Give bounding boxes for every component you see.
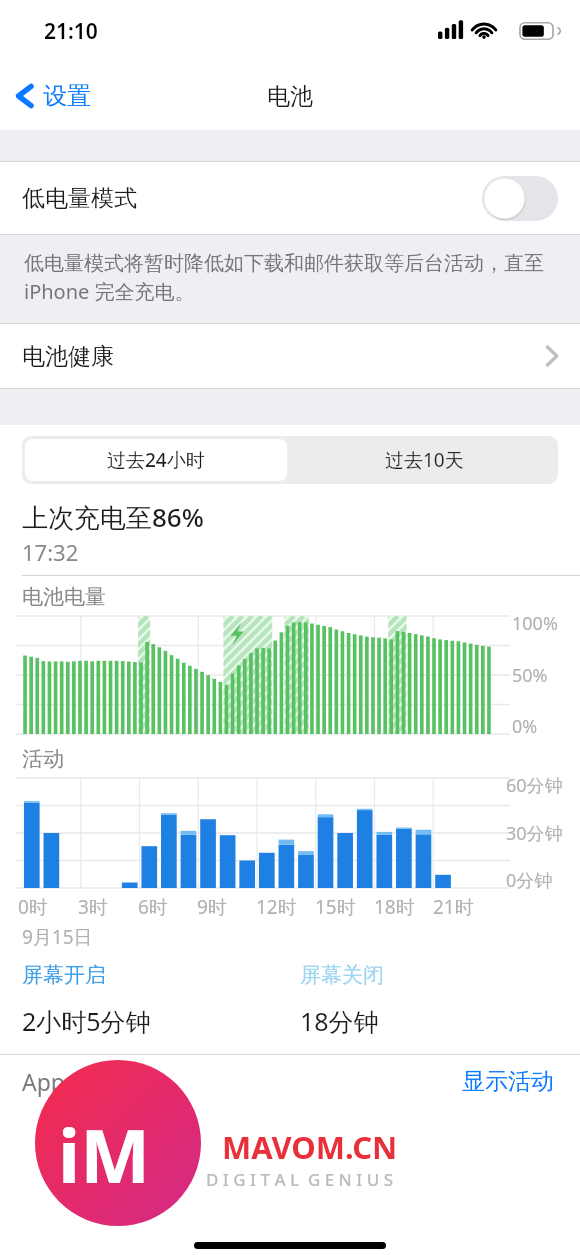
staticText: App 电池用量 (22, 1066, 163, 1097)
staticText: 100% (512, 611, 558, 636)
staticText: 电池 (267, 82, 313, 111)
staticText: 显示活动 (462, 1067, 554, 1096)
staticText: 9时 (197, 894, 227, 920)
staticText: 屏幕关闭 (300, 962, 384, 988)
button[interactable]: 低电量模式 (0, 161, 580, 235)
staticText: 设置 (43, 81, 91, 111)
staticText: 低电量模式将暂时降低如下载和邮件获取等后台活动，直至 iPhone 完全充电。 (24, 249, 558, 305)
staticText: MAVOM.CN (222, 1126, 398, 1168)
staticText: 3时 (78, 894, 108, 920)
staticText: 活动 (22, 746, 64, 772)
staticText: iM (58, 1104, 150, 1205)
button[interactable]: 电池健康 (0, 323, 580, 389)
staticText: 30分钟 (506, 821, 563, 846)
staticText: 15时 (315, 894, 356, 920)
staticText: 电池健康 (22, 342, 114, 371)
staticText: 9月15日 (22, 924, 93, 950)
button[interactable]: 显示活动 (458, 1063, 558, 1100)
staticText: 18分钟 (300, 1004, 379, 1038)
staticText: 0分钟 (506, 868, 553, 893)
staticText: 60分钟 (506, 773, 563, 798)
staticText: 屏幕开启 (22, 962, 106, 988)
staticText: 18时 (374, 894, 415, 920)
staticText: 21:10 (44, 17, 98, 46)
button[interactable]: 过去24小时 (25, 439, 287, 481)
button[interactable]: 过去10天 (290, 436, 558, 484)
staticText: 17:32 (22, 537, 79, 567)
staticText: 上次充电至86% (22, 499, 204, 535)
button[interactable]: 低电量模式开关，关闭 (482, 176, 558, 221)
staticText: 2小时5分钟 (22, 1004, 151, 1038)
staticText: 21时 (433, 894, 474, 920)
staticText: 50% (512, 663, 548, 688)
staticText: 过去24小时 (107, 447, 205, 473)
staticText: 12时 (256, 894, 297, 920)
staticText: D I G I T A L G E N I U S (206, 1168, 393, 1191)
staticText: 0% (512, 714, 538, 739)
staticText: 低电量模式 (22, 184, 137, 213)
staticText: 0时 (18, 894, 48, 920)
staticText: 6时 (138, 894, 168, 920)
staticText: 过去10天 (385, 447, 464, 473)
button[interactable]: 设置 (0, 75, 103, 117)
staticText: 电池电量 (22, 584, 106, 610)
